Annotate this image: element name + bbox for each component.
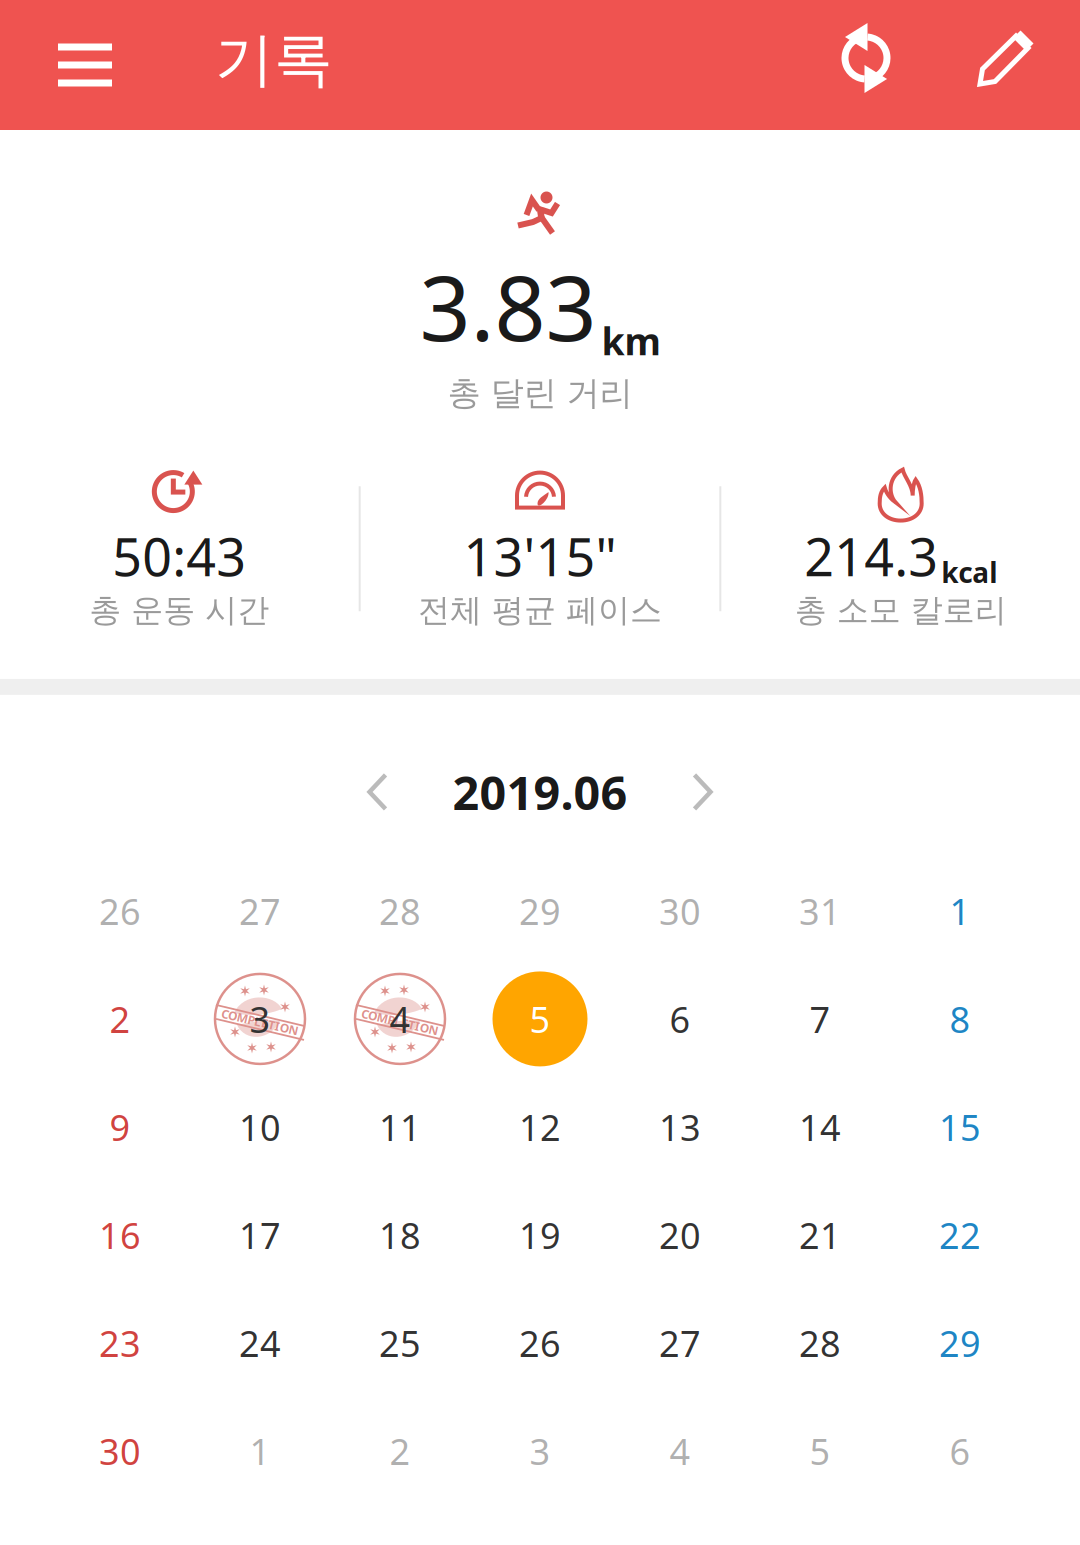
staticText: 28 [379,887,421,935]
button[interactable]: 4 [610,1397,750,1505]
button[interactable]: 19 [470,1181,610,1289]
staticText: 3.83 [419,247,596,366]
button[interactable]: 10 [190,1073,330,1181]
staticText: 6 [669,995,690,1043]
button[interactable]: COMPLETION [330,965,470,1073]
staticText: 29 [519,887,561,935]
button[interactable]: 3 [470,1397,610,1505]
button[interactable]: 29 [470,857,610,965]
staticText: 214.3 [804,522,938,591]
button[interactable]: 28 [750,1289,890,1397]
staticText: 22 [939,1211,981,1259]
staticText: 15 [939,1103,981,1151]
staticText: 27 [659,1319,701,1367]
staticText: 1 [949,887,970,935]
staticText: 9 [109,1103,130,1151]
button[interactable]: 2 [330,1397,470,1505]
staticText: 2019.06 [452,761,627,823]
staticText: 13 [659,1103,701,1151]
button[interactable]: 20 [610,1181,750,1289]
button[interactable]: 9 [50,1073,190,1181]
staticText: 7 [809,995,830,1043]
button[interactable]: Sync [810,0,922,130]
button[interactable]: 24 [190,1289,330,1397]
button[interactable]: 29 [890,1289,1030,1397]
button[interactable]: 14 [750,1073,890,1181]
staticText: 6 [949,1427,970,1475]
staticText: COMPLETION [220,1014,299,1030]
staticText: 12 [519,1103,561,1151]
button[interactable]: 28 [330,857,470,965]
button[interactable]: 17 [190,1181,330,1289]
staticText: 11 [379,1103,421,1151]
staticText: 28 [799,1319,841,1367]
button[interactable]: 11 [330,1073,470,1181]
staticText: 20 [659,1211,701,1259]
staticText: 26 [99,887,141,935]
staticText: 30 [659,887,701,935]
staticText: 총 달린 거리 [447,373,632,413]
button[interactable]: COMPLETION [190,965,330,1073]
staticText: 25 [379,1319,421,1367]
staticText: km [601,316,660,366]
staticText: 2 [109,995,130,1043]
button[interactable]: 31 [750,857,890,965]
button[interactable]: 8 [890,965,1030,1073]
button[interactable]: Next month [667,762,737,822]
button[interactable]: 13 [610,1073,750,1181]
staticText: 18 [379,1211,421,1259]
staticText: 총 운동 시간 [89,591,269,630]
button[interactable]: 6 [610,965,750,1073]
button[interactable]: 12 [470,1073,610,1181]
staticText: 21 [799,1211,841,1259]
button[interactable]: Menu [0,0,112,130]
button[interactable]: 6 [890,1397,1030,1505]
staticText: 5 [809,1427,830,1475]
staticText: 23 [99,1319,141,1367]
staticText: COMPLETION [360,1014,439,1030]
staticText: 3 [249,995,270,1043]
staticText: 총 소모 칼로리 [795,591,1007,630]
staticText: 31 [799,887,841,935]
button[interactable]: 30 [50,1397,190,1505]
staticText: 2 [389,1427,410,1475]
staticText: 전체 평균 페이스 [418,591,662,630]
button[interactable]: 22 [890,1181,1030,1289]
staticText: 24 [239,1319,281,1367]
button[interactable]: 30 [610,857,750,965]
button[interactable]: 23 [50,1289,190,1397]
staticText: 29 [939,1319,981,1367]
staticText: 19 [519,1211,561,1259]
button[interactable]: 25 [330,1289,470,1397]
staticText: 3 [529,1427,550,1475]
button[interactable]: 5 [470,965,610,1073]
button[interactable]: 21 [750,1181,890,1289]
staticText: 30 [99,1427,141,1475]
staticText: 13'15" [463,522,616,591]
staticText: 26 [519,1319,561,1367]
button[interactable]: 1 [190,1397,330,1505]
staticText: 기록 [215,24,333,96]
staticText: kcal [941,553,997,591]
button[interactable]: 18 [330,1181,470,1289]
staticText: 50:43 [112,522,246,591]
button[interactable]: 27 [190,857,330,965]
button[interactable]: Edit [950,0,1062,130]
button[interactable]: 1 [890,857,1030,965]
staticText: 10 [239,1103,281,1151]
button[interactable]: 26 [50,857,190,965]
button[interactable]: 5 [750,1397,890,1505]
button[interactable]: Previous month [342,762,412,822]
button[interactable]: 2 [50,965,190,1073]
staticText: 8 [949,995,970,1043]
button[interactable]: 16 [50,1181,190,1289]
button[interactable]: 27 [610,1289,750,1397]
staticText: 16 [99,1211,141,1259]
button[interactable]: 7 [750,965,890,1073]
button[interactable]: 15 [890,1073,1030,1181]
staticText: 17 [239,1211,281,1259]
staticText: 14 [799,1103,841,1151]
button[interactable]: 26 [470,1289,610,1397]
staticText: 1 [249,1427,270,1475]
staticText: 27 [239,887,281,935]
